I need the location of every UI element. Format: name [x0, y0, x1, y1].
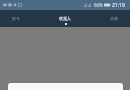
staticText: 66% [94, 2, 103, 8]
button[interactable]: 收藏 [97, 10, 130, 27]
staticText: 21:19 [112, 2, 125, 9]
button[interactable]: 拨号 [0, 10, 32, 27]
staticText: 拨号 [12, 16, 20, 21]
button[interactable]: Dismiss [0, 27, 130, 90]
button[interactable]: 联系人 [32, 10, 97, 27]
button[interactable]: Bottom sheet [8, 83, 123, 90]
staticText: 联系人 [59, 16, 71, 21]
staticText: 收藏 [110, 16, 118, 21]
